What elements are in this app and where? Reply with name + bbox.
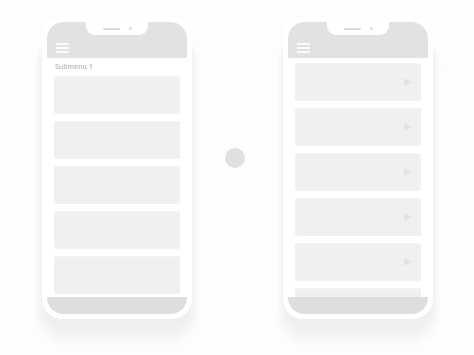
button[interactable]: Bottom bar [47,297,187,314]
button[interactable]: Bottom bar [288,297,428,314]
button[interactable]: Connector [225,148,245,168]
button[interactable]: Open navigation menu [53,39,71,57]
button[interactable]: List item, open [295,288,421,314]
button[interactable]: Open navigation menu [294,39,312,57]
staticText: Submenu 1 [55,62,93,72]
